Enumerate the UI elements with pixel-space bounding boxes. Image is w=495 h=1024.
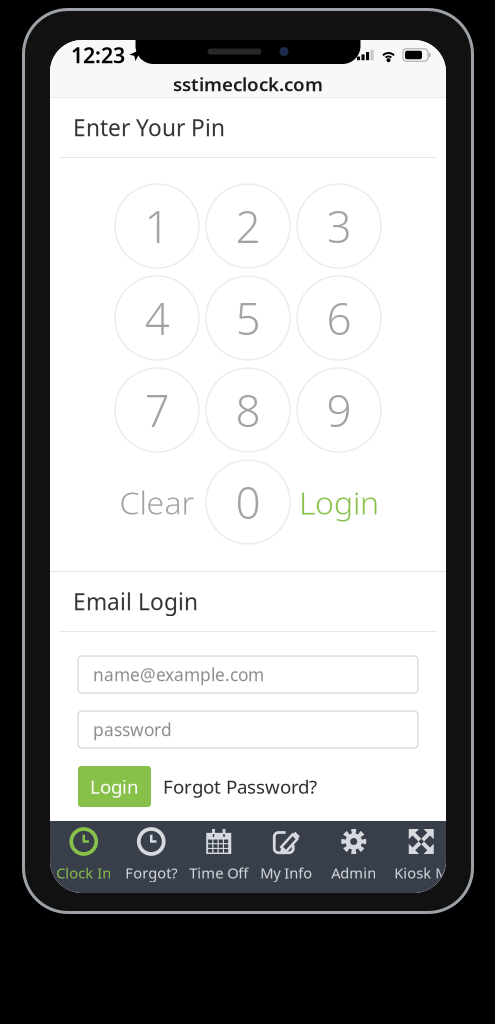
button[interactable]: Forgot? [117, 821, 185, 893]
button[interactable]: 4 [111, 272, 202, 364]
staticText: 9 [326, 381, 351, 439]
button[interactable]: 7 [111, 364, 202, 456]
staticText: 1 [144, 197, 169, 255]
button[interactable]: 3 [293, 180, 384, 272]
staticText: 4 [144, 289, 169, 347]
button[interactable]: Clear [111, 456, 202, 548]
staticText: Login [90, 774, 139, 799]
staticText: Clear [119, 481, 194, 523]
staticText: Login [299, 481, 379, 523]
button[interactable]: 2 [202, 180, 293, 272]
staticText: sstimeclock.com [173, 72, 323, 96]
button[interactable]: 1 [111, 180, 202, 272]
button[interactable]: Admin [320, 821, 387, 893]
button[interactable]: Kiosk M [387, 821, 455, 893]
staticText: 7 [144, 381, 169, 439]
button[interactable]: 9 [293, 364, 384, 456]
staticText: 2 [235, 197, 260, 255]
staticText: 8 [235, 381, 260, 439]
button[interactable]: name@example.com [50, 656, 446, 693]
button[interactable]: My Info [252, 821, 320, 893]
button[interactable]: Forgot Password? [151, 766, 329, 807]
button[interactable]: Login [78, 766, 151, 807]
button[interactable]: sstimeclock.com [50, 70, 446, 98]
staticText: Forgot Password? [163, 774, 317, 799]
button[interactable]: Time Off [185, 821, 252, 893]
button[interactable]: 8 [202, 364, 293, 456]
button[interactable]: 5 [202, 272, 293, 364]
button[interactable]: 0 [202, 456, 293, 548]
staticText: Time Off [189, 863, 248, 882]
staticText: Clock In [56, 863, 111, 882]
button[interactable]: 6 [293, 272, 384, 364]
staticText: 0 [235, 473, 260, 531]
staticText: Forgot? [125, 863, 177, 882]
staticText: 5 [235, 289, 260, 347]
staticText: Admin [331, 863, 376, 882]
button[interactable]: password [50, 711, 446, 748]
staticText: Enter Your Pin [73, 112, 225, 142]
staticText: 6 [326, 289, 351, 347]
staticText: password [93, 718, 172, 741]
button[interactable]: Clock In [50, 821, 117, 893]
staticText: Email Login [73, 586, 198, 616]
staticText: name@example.com [93, 663, 264, 686]
staticText: 12:23 [71, 41, 125, 69]
button[interactable]: Login [293, 456, 384, 548]
staticText: Kiosk M [394, 863, 448, 882]
staticText: My Info [260, 863, 312, 882]
staticText: 3 [326, 197, 351, 255]
